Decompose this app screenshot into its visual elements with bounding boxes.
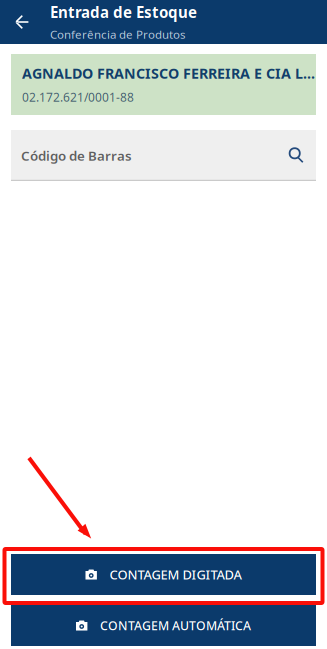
staticText: AGNALDO FRANCISCO FERREIRA E CIA L... [22, 64, 315, 83]
button[interactable]: CONTAGEM AUTOMÁTICA [11, 605, 316, 646]
staticText: CONTAGEM AUTOMÁTICA [100, 617, 251, 634]
staticText: Conferência de Produtos [50, 26, 186, 42]
button[interactable]: CONTAGEM DIGITADA [11, 554, 316, 595]
button[interactable]: Back [0, 0, 44, 44]
staticText: 02.172.621/0001-88 [22, 89, 134, 105]
staticText: CONTAGEM DIGITADA [109, 566, 241, 583]
staticText: Entrada de Estoque [50, 2, 197, 22]
staticText: Código de Barras [21, 146, 132, 165]
